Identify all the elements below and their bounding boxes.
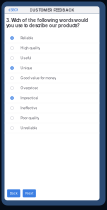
button[interactable]: Impractical xyxy=(4,93,99,103)
button[interactable]: Useful xyxy=(4,53,99,63)
button[interactable]: Back xyxy=(7,189,20,197)
staticText: Back xyxy=(10,8,18,12)
staticText: Poor quality xyxy=(20,116,39,120)
staticText: Ineffective xyxy=(20,106,37,110)
staticText: Unique xyxy=(20,66,32,70)
staticText: Good value for money xyxy=(20,76,56,80)
button[interactable]: Overpriced xyxy=(4,83,99,93)
button[interactable]: Reliable xyxy=(4,33,99,43)
staticText: Next xyxy=(25,191,33,195)
button[interactable]: Ineffective xyxy=(4,103,99,113)
staticText: High quality xyxy=(20,46,40,50)
button[interactable]: High quality xyxy=(4,43,99,53)
staticText: Unreliable xyxy=(20,126,37,130)
button[interactable]: Unreliable xyxy=(4,123,99,133)
button[interactable]: Unique xyxy=(4,63,99,73)
button[interactable]: Poor quality xyxy=(4,113,99,123)
staticText: 3. Wich of the following words would you… xyxy=(6,18,88,28)
button[interactable]: Back xyxy=(4,6,18,14)
staticText: Overpriced xyxy=(20,86,38,90)
button[interactable]: Next xyxy=(23,189,36,197)
staticText: CUSTOMER FEEDBACK xyxy=(29,8,74,12)
button[interactable]: Good value for money xyxy=(4,73,99,83)
staticText: Useful xyxy=(20,56,31,60)
staticText: Impractical xyxy=(20,96,38,100)
staticText: Reliable xyxy=(20,36,33,40)
staticText: Back xyxy=(10,191,18,195)
